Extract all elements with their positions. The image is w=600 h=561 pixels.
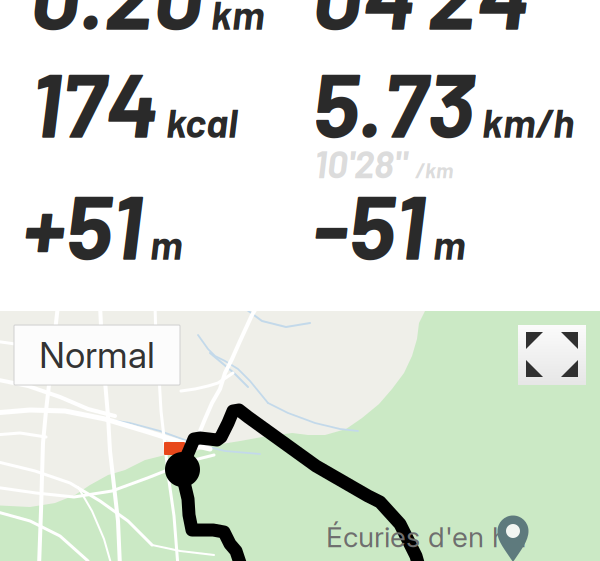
- staticText: /km: [415, 157, 453, 183]
- staticText: 04'24: [312, 0, 529, 48]
- staticText: -51: [312, 169, 425, 278]
- staticText: +51: [22, 169, 142, 278]
- staticText: km/h: [482, 98, 574, 146]
- staticText: Normal: [39, 333, 155, 377]
- staticText: 5.73: [312, 47, 474, 156]
- staticText: 0.20: [30, 0, 203, 48]
- staticText: 174: [30, 47, 158, 156]
- staticText: 10'28": [314, 141, 407, 186]
- button[interactable]: Normal: [14, 325, 180, 385]
- staticText: km: [211, 0, 264, 38]
- staticText: m: [150, 220, 182, 268]
- staticText: kcal: [166, 98, 237, 146]
- button[interactable]: Expand map: [518, 325, 586, 385]
- staticText: Écuries d'en hill: [326, 520, 526, 554]
- staticText: m: [433, 220, 465, 268]
